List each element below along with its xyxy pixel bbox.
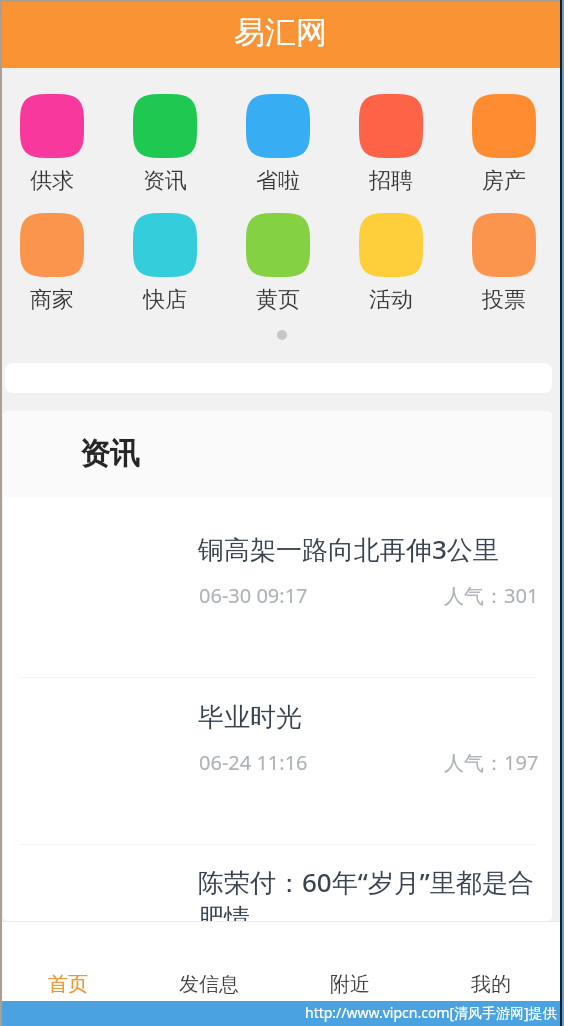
button[interactable]: 黄页 [246,213,310,314]
staticText: 毕业时光 [198,701,302,734]
button[interactable]: 铜高架一路向北再伸3公里 [3,497,552,677]
staticText: 资讯 [80,435,140,473]
button[interactable]: 招聘 [359,94,423,195]
button[interactable]: 首页 [0,921,141,1001]
button[interactable]: 活动 [359,213,423,314]
staticText: 投票 [482,286,526,314]
button[interactable]: 资讯 [133,94,197,195]
staticText: 我的 [471,972,511,997]
staticText: 省啦 [256,167,300,195]
button[interactable]: 毕业时光 [3,678,552,844]
button[interactable]: 陈荣付：60年“岁月”里都是合肥情 [3,845,552,921]
staticText: 发信息 [179,972,239,997]
staticText: 人气：197 [444,749,539,776]
button[interactable]: 房产 [472,94,536,195]
staticText: 陈荣付：60年“岁月”里都是合肥情 [198,864,543,921]
staticText: 活动 [369,286,413,314]
staticText: 铜高架一路向北再伸3公里 [198,531,499,567]
staticText: http://www.vipcn.com[清风手游网]提供 [305,1003,557,1022]
button[interactable]: 快店 [133,213,197,314]
staticText: 黄页 [256,286,300,314]
staticText: 06-24 11:16 [199,749,308,776]
button[interactable]: 商家 [20,213,84,314]
button[interactable]: 省啦 [246,94,310,195]
button[interactable]: 发信息 [141,921,282,1001]
button[interactable]: 供求 [20,94,84,195]
button[interactable]: 投票 [472,213,536,314]
staticText: 人气：301 [444,582,539,609]
staticText: 房产 [482,167,526,195]
staticText: 招聘 [369,167,413,195]
staticText: 资讯 [143,167,187,195]
staticText: 易汇网 [234,13,327,52]
button[interactable]: 附近 [282,921,423,1001]
staticText: 06-30 09:17 [199,582,308,609]
staticText: 供求 [30,167,74,195]
button[interactable]: 资讯 [3,411,552,497]
staticText: 首页 [48,972,88,997]
button[interactable]: 我的 [423,921,564,1001]
staticText: 商家 [30,286,74,314]
staticText: 附近 [330,972,370,997]
staticText: 快店 [143,286,187,314]
